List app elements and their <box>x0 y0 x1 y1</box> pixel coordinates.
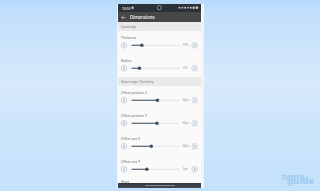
staticText: Radius <box>121 58 132 63</box>
button[interactable]: Radius <box>118 54 201 77</box>
button[interactable]: Offset position Y <box>118 109 201 132</box>
staticText: Gesture edge - Fine tuning <box>121 80 154 84</box>
staticText: 50px <box>180 144 191 148</box>
staticText: 10% <box>180 43 191 47</box>
staticText: Offset position Y <box>121 113 147 118</box>
staticText: guide <box>287 174 314 187</box>
staticText: Reset <box>121 180 130 184</box>
staticText: Thickness <box>121 35 137 40</box>
staticText: Offset size Y <box>121 159 141 164</box>
button[interactable]: Offset position X <box>118 86 201 109</box>
button[interactable]: Offset size X <box>118 132 201 155</box>
staticText: 50px <box>180 121 191 125</box>
button[interactable]: Navigate up <box>119 13 128 22</box>
staticText: Offset position X <box>121 90 148 95</box>
button[interactable]: Offset size Y <box>118 155 201 178</box>
staticText: 50px <box>180 98 191 102</box>
staticText: Offset size X <box>121 136 141 141</box>
staticText: 5px <box>180 167 191 171</box>
staticText: 6% <box>180 66 191 70</box>
staticText: Curved edge <box>121 25 137 29</box>
staticText: Dimensions <box>130 14 155 20</box>
button[interactable]: Thickness <box>118 31 201 54</box>
staticText: 10:16 <box>122 6 131 10</box>
staticText: tom's <box>282 171 305 182</box>
